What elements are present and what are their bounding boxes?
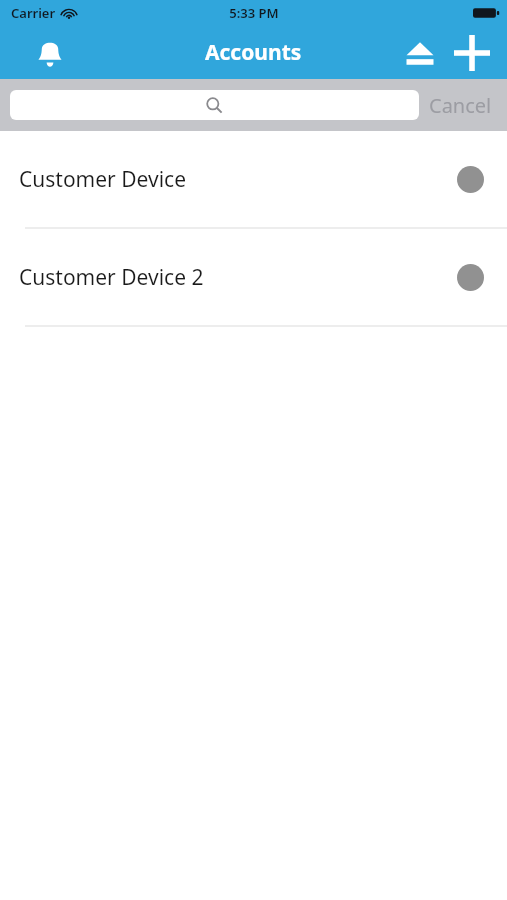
staticText: Carrier [11, 4, 56, 22]
staticText: Customer Device 2 [19, 263, 204, 292]
staticText: Accounts [205, 38, 302, 67]
button[interactable]: Customer Device 2 [0, 229, 507, 327]
button[interactable]: Search [10, 90, 419, 120]
staticText: Cancel [429, 92, 492, 119]
button[interactable]: Notifications [24, 27, 76, 79]
button[interactable]: Eject [395, 28, 445, 78]
staticText: 5:33 PM [229, 4, 279, 22]
button[interactable]: Cancel [419, 79, 492, 131]
staticText: Customer Device [19, 165, 186, 194]
button[interactable]: Add account [445, 26, 499, 79]
button[interactable]: Customer Device [0, 131, 507, 229]
